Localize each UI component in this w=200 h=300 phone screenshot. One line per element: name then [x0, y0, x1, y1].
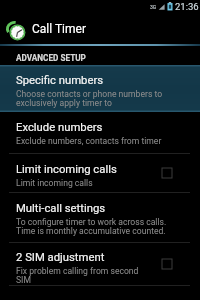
button[interactable]: Multi-call settings [0, 193, 200, 242]
staticText: Fix problem calling from second SIM [16, 266, 150, 285]
staticText: ADVANCED SETUP [16, 53, 86, 63]
staticText: Exclude numbers, contacts from timer [16, 136, 162, 146]
staticText: Limit incoming calls [16, 163, 117, 176]
staticText: Choose contacts or phone numbers to excl… [16, 89, 190, 108]
staticText: 3G [150, 4, 157, 10]
staticText: Limit incoming calls [16, 178, 93, 188]
staticText: Exclude numbers [16, 121, 103, 134]
staticText: 2 SIM adjustment [16, 251, 105, 264]
button[interactable]: Limit incoming calls [0, 154, 200, 192]
button[interactable]: Specific numbers [0, 65, 200, 112]
staticText: Specific numbers [16, 74, 104, 87]
staticText: Multi-call settings [16, 202, 106, 215]
button[interactable]: 2 SIM adjustment [0, 243, 200, 285]
staticText: To configure timer to work across calls.… [16, 217, 167, 236]
button[interactable]: Toggle 2 SIM adjustment [152, 243, 182, 285]
button[interactable]: Exclude numbers [0, 112, 200, 153]
staticText: Call Timer [32, 22, 86, 36]
staticText: 21:36 [175, 1, 199, 12]
button[interactable]: Toggle Limit incoming calls [152, 154, 182, 192]
